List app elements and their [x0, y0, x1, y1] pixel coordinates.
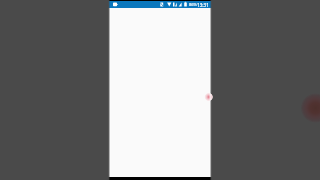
staticText: 86% — [189, 2, 197, 7]
button[interactable]: Add — [204, 93, 212, 101]
staticText: 13:31 — [197, 2, 209, 8]
